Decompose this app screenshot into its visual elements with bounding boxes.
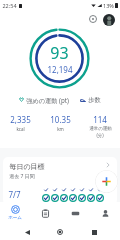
staticText: 93 [50,42,69,64]
staticText: 過去 7 日間 [9,173,35,180]
button[interactable]: Journal [30,202,60,224]
button[interactable]: Help [86,12,99,25]
button[interactable]: Add [95,170,118,193]
staticText: 22:54 [2,2,17,9]
staticText: 強めの運動 (pt) [26,96,69,104]
button[interactable]: Browse [60,202,90,224]
staticText: 2,335 [10,114,31,125]
staticText: 13% [103,2,114,9]
staticText: 通常の運動 [89,126,112,132]
staticText: 毎日の目標 [9,162,45,171]
button[interactable]: Recents [87,225,101,239]
staticText: kcal [16,126,25,132]
button[interactable]: 毎日の目標 [3,158,117,218]
button[interactable]: Profile [90,202,120,224]
button[interactable]: Profile [103,14,115,26]
button[interactable]: Home [53,225,67,239]
staticText: (分) [96,132,104,138]
staticText: ホーム [8,215,22,221]
staticText: 12,194 [47,64,73,75]
staticText: km [57,126,64,132]
staticText: 10.35 [50,114,71,125]
staticText: 114 [93,114,107,125]
staticText: 7/7 [8,189,21,200]
button[interactable]: Back [20,225,34,239]
button[interactable]: ホーム [0,202,30,224]
staticText: 歩数 [88,96,101,104]
